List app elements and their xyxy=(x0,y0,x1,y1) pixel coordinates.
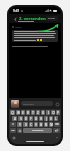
button[interactable]: Nachricht xyxy=(21,101,53,106)
button[interactable]: I xyxy=(46,110,50,115)
staticText: D xyxy=(25,117,27,121)
button[interactable]: Emoji keyboard xyxy=(12,136,15,139)
button[interactable]: S xyxy=(18,116,23,121)
button[interactable]: U xyxy=(41,110,45,115)
staticText: Heute xyxy=(15,25,22,28)
staticText: Z xyxy=(37,111,39,115)
button[interactable]: Back xyxy=(12,16,18,22)
staticText: Senden xyxy=(48,16,56,21)
staticText: M xyxy=(50,123,53,127)
staticText: C xyxy=(30,123,32,127)
button[interactable]: D xyxy=(24,116,28,121)
button[interactable]: Y xyxy=(17,122,22,127)
button[interactable]: 123 xyxy=(10,128,16,133)
button[interactable]: Send xyxy=(55,102,59,106)
staticText: E xyxy=(22,111,24,115)
button[interactable]: C xyxy=(29,122,33,127)
staticText: S xyxy=(20,117,22,121)
button[interactable]: V xyxy=(34,122,38,127)
staticText: 9:41 xyxy=(13,9,20,13)
button[interactable]: Leerzeichen xyxy=(23,128,52,133)
staticText: I xyxy=(48,111,49,115)
staticText: 2. versenden xyxy=(19,16,46,22)
button[interactable]: O xyxy=(51,110,55,115)
button[interactable]: Return xyxy=(53,128,60,133)
staticText: R xyxy=(27,111,29,115)
button[interactable]: Backspace xyxy=(54,122,60,127)
button[interactable]: T xyxy=(31,110,35,115)
staticText: Leerzeichen xyxy=(32,129,44,132)
button[interactable]: A xyxy=(12,116,17,121)
button[interactable]: M xyxy=(49,122,53,127)
button[interactable]: X xyxy=(23,122,28,127)
staticText: A xyxy=(14,117,16,121)
button[interactable]: H xyxy=(39,116,43,121)
staticText: F xyxy=(30,117,32,121)
staticText: ⌫ xyxy=(55,123,59,126)
staticText: Q xyxy=(11,111,14,115)
button[interactable]: W xyxy=(16,110,20,115)
button[interactable]: Z xyxy=(36,110,40,115)
button[interactable]: Emoji xyxy=(17,128,22,133)
button[interactable]: Shift xyxy=(10,122,16,127)
button[interactable]: P xyxy=(56,110,60,115)
staticText: X xyxy=(25,123,27,127)
staticText: W xyxy=(17,111,20,115)
staticText: L xyxy=(55,117,57,121)
button[interactable]: L xyxy=(54,116,58,121)
button[interactable]: K xyxy=(49,116,53,121)
staticText: U xyxy=(42,111,44,115)
button[interactable]: N xyxy=(44,122,48,127)
button[interactable]: Dictation xyxy=(55,136,58,139)
button[interactable]: J xyxy=(44,116,48,121)
button[interactable]: G xyxy=(34,116,38,121)
staticText: B xyxy=(40,123,42,127)
button[interactable]: Q xyxy=(10,110,15,115)
staticText: G xyxy=(35,117,37,121)
staticText: V xyxy=(35,123,37,127)
staticText: N xyxy=(45,123,47,127)
button[interactable]: Attachment preview xyxy=(11,100,19,108)
button[interactable]: Senden xyxy=(48,16,56,21)
staticText: ⇧ xyxy=(12,123,15,126)
staticText: T xyxy=(32,111,34,115)
button[interactable]: E xyxy=(21,110,25,115)
staticText: H xyxy=(40,117,42,121)
staticText: O xyxy=(52,111,55,115)
staticText: K xyxy=(50,117,52,121)
button[interactable]: B xyxy=(39,122,43,127)
staticText: P xyxy=(57,111,59,115)
staticText: 123 xyxy=(11,129,15,132)
staticText: Y xyxy=(19,123,21,127)
button[interactable]: R xyxy=(26,110,30,115)
button[interactable]: F xyxy=(29,116,33,121)
staticText: Nachricht xyxy=(23,102,34,105)
